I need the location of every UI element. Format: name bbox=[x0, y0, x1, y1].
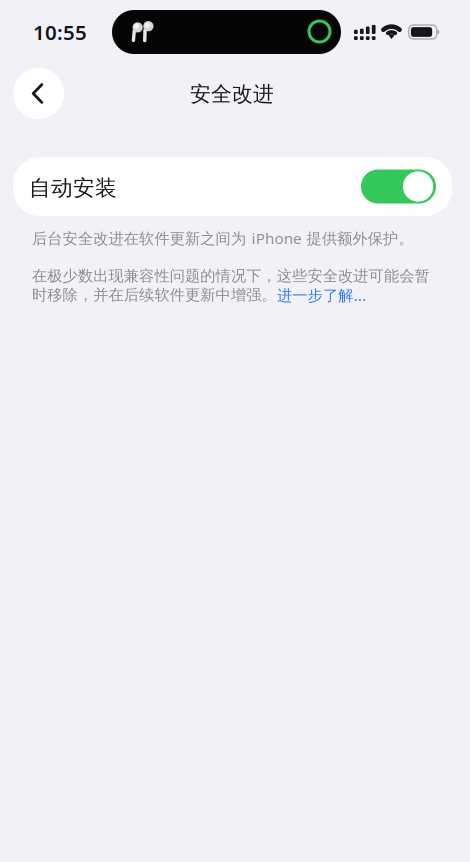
staticText: 在极少数出现兼容性问题的情况下，这些安全改进可能会暂 bbox=[32, 266, 429, 285]
staticText: 进一步了解... bbox=[277, 285, 366, 305]
button[interactable]: 进一步了解... bbox=[277, 286, 377, 304]
button[interactable]: 自动安装 bbox=[13, 157, 452, 216]
staticText: 10:55 bbox=[33, 18, 87, 46]
staticText: 时移除，并在后续软件更新中增强。 bbox=[32, 285, 276, 304]
staticText: 后台安全改进在软件更新之间为 iPhone 提供额外保护。 bbox=[32, 228, 413, 248]
staticText: 自动安装 bbox=[29, 174, 117, 202]
staticText: 安全改进 bbox=[190, 81, 274, 107]
button[interactable]: 返回 bbox=[13, 68, 64, 119]
